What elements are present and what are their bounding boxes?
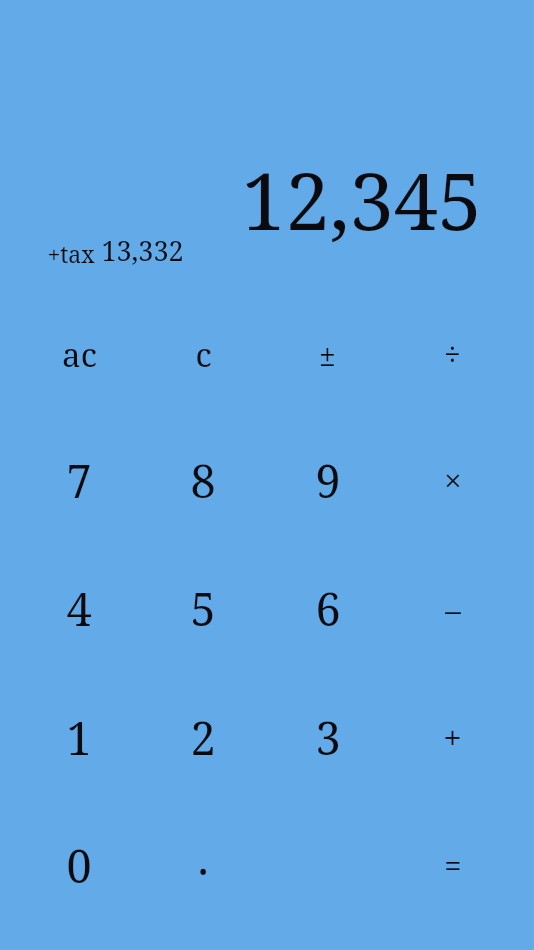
button[interactable]: 4 — [17, 544, 141, 673]
staticText: 6 — [315, 578, 341, 639]
staticText: c — [195, 332, 212, 377]
button[interactable]: Multiply — [390, 416, 515, 544]
button[interactable]: Subtract — [390, 544, 515, 673]
button[interactable]: 6 — [265, 544, 390, 673]
staticText: + — [443, 715, 462, 760]
staticText: 1 — [66, 707, 92, 768]
button[interactable]: 2 — [141, 673, 265, 801]
staticText: ± — [319, 334, 336, 375]
staticText: = — [444, 844, 462, 886]
button[interactable]: 7 — [17, 416, 141, 544]
staticText: 9 — [315, 450, 341, 511]
staticText: . — [197, 827, 209, 888]
button[interactable]: 3 — [265, 673, 390, 801]
staticText: 2 — [190, 707, 216, 768]
staticText: +tax — [47, 238, 95, 269]
staticText: 4 — [66, 578, 92, 639]
button[interactable]: Equals — [390, 801, 515, 929]
staticText: 8 — [190, 450, 216, 511]
button[interactable]: Divide — [390, 293, 515, 416]
button[interactable]: Plus or minus — [265, 293, 390, 416]
staticText: ÷ — [444, 334, 461, 375]
button[interactable]: 1 — [17, 673, 141, 801]
staticText: 13,332 — [101, 232, 184, 269]
button[interactable]: 8 — [141, 416, 265, 544]
button[interactable]: 9 — [265, 416, 390, 544]
staticText: 12,345 — [241, 146, 482, 254]
staticText: × — [444, 459, 462, 501]
button[interactable]: 0 — [17, 801, 141, 929]
button[interactable]: c — [141, 293, 265, 416]
button[interactable]: 5 — [141, 544, 265, 673]
button[interactable]: Add — [390, 673, 515, 801]
staticText: ac — [62, 332, 97, 377]
staticText: – — [445, 588, 461, 630]
staticText: 0 — [66, 835, 92, 896]
staticText: 7 — [66, 450, 92, 511]
staticText: 5 — [190, 578, 216, 639]
staticText: 3 — [315, 707, 341, 768]
button[interactable]: Decimal point — [141, 801, 265, 929]
button[interactable]: ac — [17, 293, 141, 416]
